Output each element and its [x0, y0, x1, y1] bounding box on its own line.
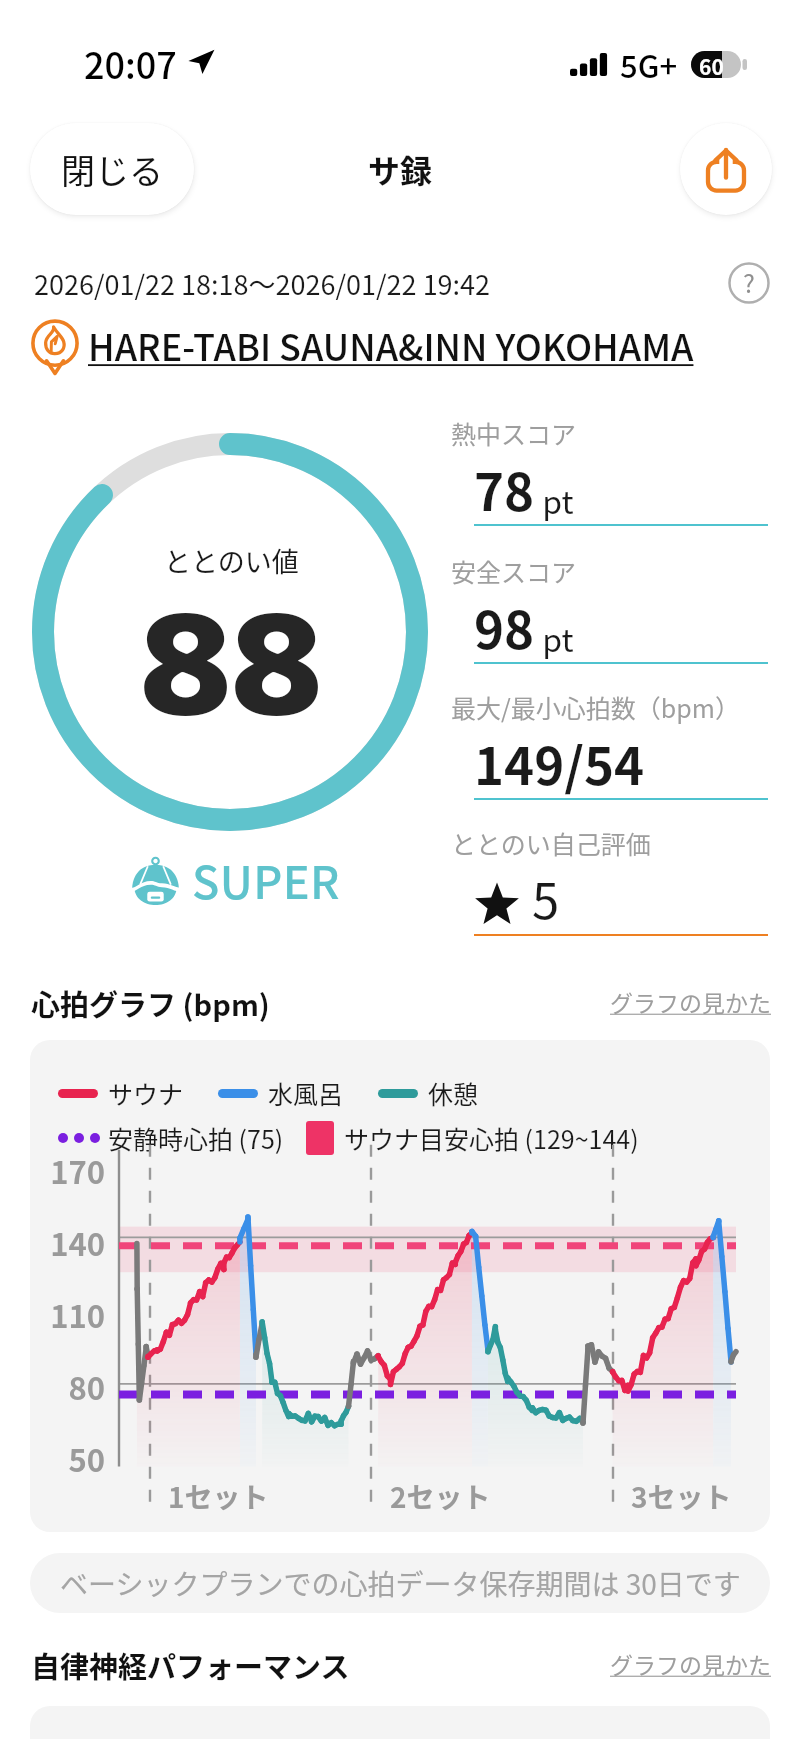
staticText: 2026/01/22 18:18〜2026/01/22 19:42 [34, 264, 491, 303]
staticText: 149/54 [474, 726, 645, 800]
button[interactable]: グラフの見かた [610, 1647, 771, 1680]
staticText: 60 [699, 51, 724, 78]
staticText: 20:07 [84, 37, 177, 89]
button[interactable]: 閉じる [30, 123, 194, 215]
staticText: ベーシックプランでの心拍データ保存期間は 30日です [60, 1563, 741, 1604]
staticText: 最大/最小心拍数（bpm） [451, 689, 791, 725]
staticText: 80 [40, 1364, 105, 1409]
staticText: ととのい値 [164, 541, 299, 580]
staticText: 安全スコア [451, 553, 791, 589]
staticText: 50 [40, 1436, 105, 1481]
staticText: グラフの見かた [610, 1647, 771, 1680]
staticText: 心拍グラフ (bpm) [31, 982, 270, 1024]
staticText: サウナ [108, 1075, 184, 1111]
staticText: ととのい自己評価 [451, 825, 791, 861]
staticText: 3セット [631, 1476, 732, 1517]
staticText: 170 [40, 1148, 105, 1193]
staticText: pt [535, 615, 574, 661]
staticText: HARE-TABI SAUNA&INN YOKOHAMA [88, 319, 694, 371]
staticText: 5 [532, 862, 560, 933]
staticText: グラフの見かた [610, 985, 771, 1018]
staticText: 5G+ [620, 42, 678, 87]
staticText: pt [535, 477, 574, 523]
staticText: サウナ目安心拍 (129~144) [344, 1120, 639, 1156]
staticText: 88 [140, 567, 323, 760]
staticText: サ録 [368, 146, 433, 192]
staticText: 自律神経パフォーマンス [31, 1644, 350, 1686]
staticText: 110 [40, 1292, 105, 1337]
staticText: 水風呂 [268, 1075, 344, 1111]
staticText: 98 [474, 590, 535, 664]
staticText: 78 [474, 452, 535, 526]
staticText: 安静時心拍 (75) [108, 1120, 284, 1156]
staticText: 熱中スコア [451, 415, 791, 451]
staticText: 140 [40, 1220, 105, 1265]
button[interactable]: Help [728, 262, 770, 304]
button[interactable]: Share [680, 123, 772, 215]
staticText: 2セット [390, 1476, 491, 1517]
staticText: 1セット [168, 1476, 269, 1517]
button[interactable]: グラフの見かた [610, 985, 771, 1018]
staticText: 休憩 [428, 1075, 479, 1111]
button[interactable]: HARE-TABI SAUNA&INN YOKOHAMA [88, 319, 694, 371]
staticText: SUPER [192, 847, 341, 912]
staticText: 閉じる [61, 145, 163, 194]
staticText: ? [743, 264, 755, 300]
